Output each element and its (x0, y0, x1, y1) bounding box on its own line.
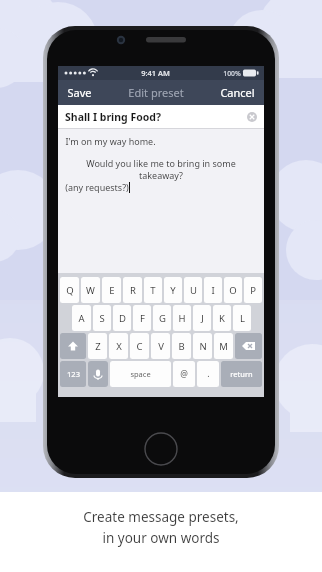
button[interactable]: Clear title (247, 112, 257, 122)
button[interactable]: S (93, 305, 111, 331)
staticText: I (211, 284, 215, 297)
staticText: H (178, 312, 186, 325)
staticText: B (178, 340, 185, 353)
button[interactable]: I (204, 277, 222, 303)
staticText: P (250, 284, 256, 297)
button[interactable]: V (151, 333, 170, 359)
staticText: S (99, 312, 105, 325)
staticText: I'm on my way home. (65, 135, 156, 147)
button[interactable]: Save (65, 82, 94, 103)
staticText: Would you like me to bring in some takea… (65, 157, 257, 181)
staticText: R (130, 284, 136, 297)
button[interactable]: L (233, 305, 251, 331)
button[interactable]: A (72, 305, 91, 331)
button[interactable]: M (214, 333, 233, 359)
staticText: 123 (67, 369, 80, 379)
staticText: (any requests?) (65, 181, 129, 193)
button[interactable]: X (109, 333, 128, 359)
button[interactable]: Shall I bring Food? (58, 105, 264, 128)
button[interactable]: W (81, 277, 100, 303)
button[interactable]: E (102, 277, 121, 303)
staticText: Z (95, 340, 101, 353)
staticText: O (229, 284, 237, 297)
button[interactable]: @ (173, 361, 195, 387)
staticText: D (119, 312, 126, 325)
staticText: Y (170, 284, 176, 297)
button[interactable]: Home (144, 432, 178, 466)
button[interactable]: C (130, 333, 149, 359)
button[interactable]: Z (88, 333, 107, 359)
staticText: return (230, 369, 253, 379)
staticText: @ (180, 368, 188, 380)
button[interactable]: Q (60, 277, 79, 303)
staticText: K (219, 312, 225, 325)
staticText: Shall I bring Food? (65, 110, 161, 124)
staticText: . (207, 368, 210, 380)
button[interactable]: D (113, 305, 131, 331)
staticText: 100% (223, 69, 241, 78)
staticText: Q (66, 284, 74, 297)
button[interactable]: return (221, 361, 262, 387)
staticText: J (201, 312, 204, 325)
button[interactable]: Shift (60, 333, 86, 359)
button[interactable]: O (224, 277, 242, 303)
button[interactable]: F (133, 305, 151, 331)
button[interactable]: J (193, 305, 211, 331)
button[interactable]: Backspace (235, 333, 262, 359)
staticText: V (158, 340, 164, 353)
staticText: in your own words (102, 529, 220, 547)
button[interactable]: U (184, 277, 202, 303)
staticText: U (190, 284, 197, 297)
button[interactable]: T (144, 277, 162, 303)
staticText: N (199, 340, 207, 353)
staticText: M (219, 340, 228, 353)
staticText: F (140, 312, 145, 325)
staticText: L (240, 312, 245, 325)
staticText: Cancel (220, 85, 255, 100)
staticText: A (78, 312, 85, 325)
staticText: Edit preset (128, 85, 184, 100)
staticText: 9:41 AM (141, 68, 170, 78)
button[interactable]: N (193, 333, 212, 359)
button[interactable]: P (244, 277, 262, 303)
staticText: C (136, 340, 143, 353)
staticText: Create message presets, (83, 508, 239, 526)
button[interactable]: space (110, 361, 171, 387)
staticText: Save (67, 85, 92, 100)
staticText: T (150, 284, 156, 297)
button[interactable]: H (173, 305, 191, 331)
staticText: G (159, 312, 166, 325)
staticText: E (109, 284, 115, 297)
staticText: space (130, 369, 151, 379)
button[interactable]: 123 (60, 361, 86, 387)
staticText: X (116, 340, 122, 353)
button[interactable]: Cancel (218, 82, 257, 103)
button[interactable]: G (153, 305, 171, 331)
button[interactable]: R (123, 277, 142, 303)
button[interactable]: Y (164, 277, 182, 303)
button[interactable]: . (197, 361, 219, 387)
button[interactable]: I'm on my way home. (58, 129, 264, 273)
button[interactable]: B (172, 333, 191, 359)
button[interactable]: Dictate (88, 361, 108, 387)
staticText: W (86, 284, 95, 297)
button[interactable]: K (213, 305, 231, 331)
